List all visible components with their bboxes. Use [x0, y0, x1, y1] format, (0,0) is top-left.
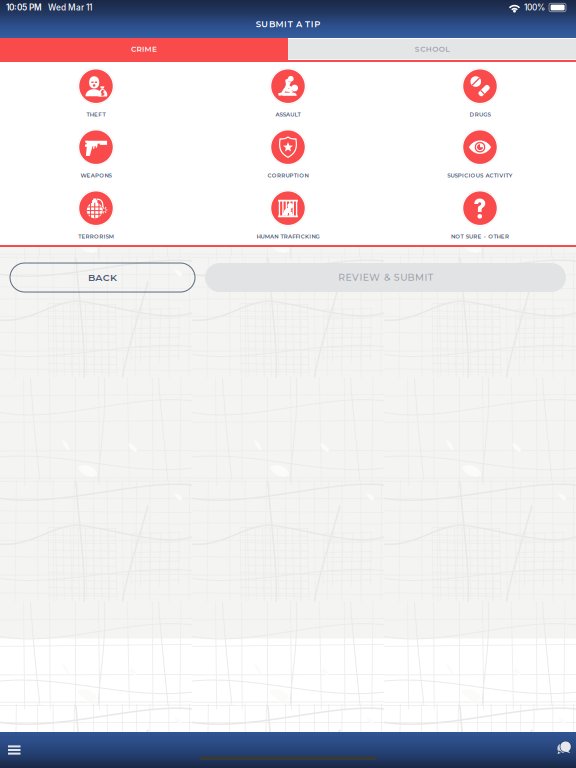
staticText: 10:05 PM: [6, 2, 42, 12]
button[interactable]: SCHOOL: [288, 38, 576, 60]
button[interactable]: WEAPONS: [0, 123, 192, 184]
button[interactable]: CRIME: [0, 38, 288, 60]
staticText: SUSPICIOUS ACTIVITY: [447, 172, 513, 179]
button[interactable]: BACK: [10, 263, 195, 292]
staticText: THEFT: [87, 111, 105, 118]
staticText: CORRUPTION: [268, 172, 308, 179]
staticText: WEAPONS: [80, 172, 112, 179]
button[interactable]: DRUGS: [384, 62, 576, 123]
staticText: Wed Mar 11: [42, 2, 92, 12]
staticText: SUBMIT A TIP: [256, 19, 320, 29]
button[interactable]: THEFT: [0, 62, 192, 123]
button[interactable]: CORRUPTION: [192, 123, 384, 184]
staticText: ASSAULT: [275, 111, 301, 118]
button[interactable]: ASSAULT: [192, 62, 384, 123]
button[interactable]: TERRORISM: [0, 184, 192, 245]
staticText: DRUGS: [470, 111, 490, 118]
staticText: TERRORISM: [78, 233, 114, 240]
button[interactable]: REVIEW & SUBMIT: [205, 263, 566, 292]
staticText: CRIME: [131, 44, 157, 53]
staticText: 100%: [520, 2, 549, 12]
staticText: HUMAN TRAFFICKING: [256, 233, 320, 240]
button[interactable]: HUMAN TRAFFICKING: [192, 184, 384, 245]
staticText: REVIEW & SUBMIT: [338, 272, 433, 283]
staticText: NOT SURE - OTHER: [451, 233, 509, 240]
staticText: SCHOOL: [415, 44, 449, 53]
button[interactable]: Menu: [0, 736, 30, 764]
staticText: BACK: [88, 272, 117, 283]
button[interactable]: Messages: [547, 735, 576, 765]
button[interactable]: NOT SURE - OTHER: [384, 184, 576, 245]
button[interactable]: SUSPICIOUS ACTIVITY: [384, 123, 576, 184]
